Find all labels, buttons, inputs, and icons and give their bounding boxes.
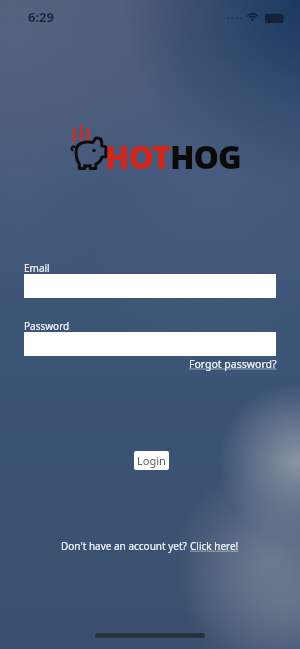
- staticText: Password: [24, 319, 70, 333]
- staticText: Email: [24, 261, 50, 275]
- staticText: 6:29: [28, 8, 54, 26]
- button[interactable]: Click here!: [190, 539, 239, 553]
- staticText: HOTHOG: [105, 135, 241, 179]
- staticText: Login: [137, 453, 166, 468]
- staticText: Don't have an account yet?: [61, 539, 190, 553]
- button[interactable]: Forgot password?: [189, 357, 277, 371]
- button[interactable]: Login: [134, 451, 169, 470]
